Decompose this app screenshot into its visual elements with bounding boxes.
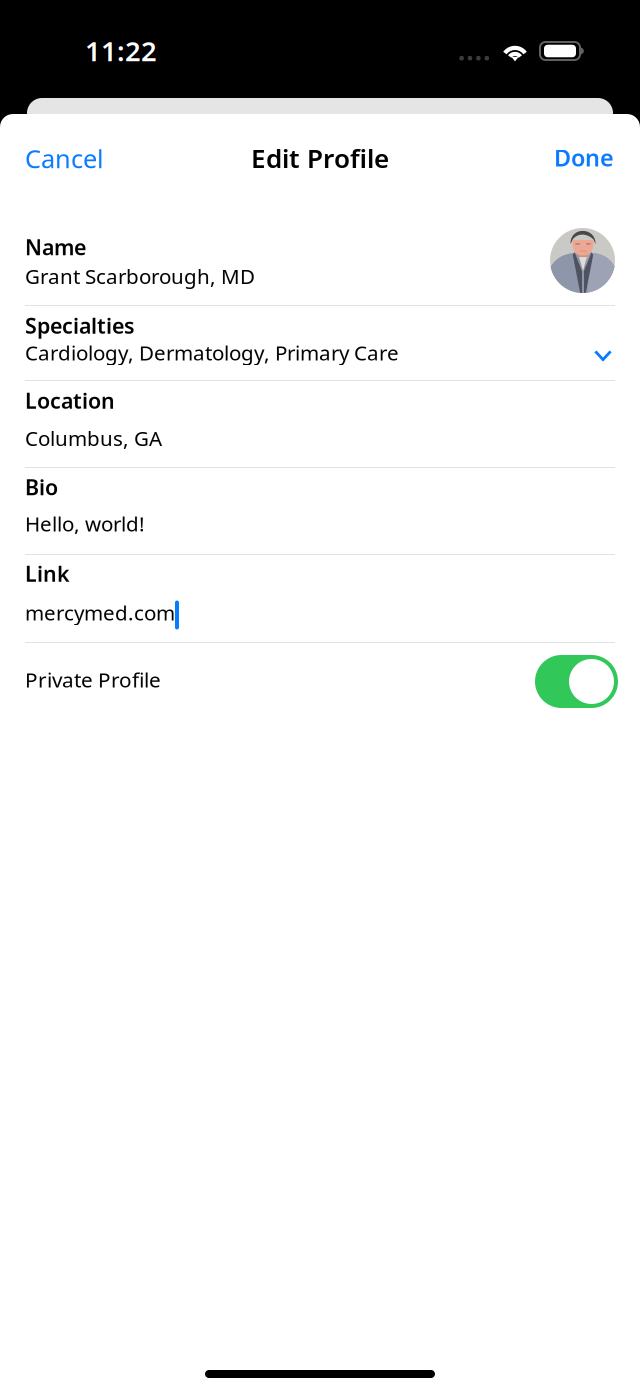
staticText: Specialties <box>25 311 135 340</box>
staticText: Cardiology, Dermatology, Primary Care <box>25 338 399 366</box>
button[interactable]: Name <box>0 209 640 305</box>
staticText: 11:22 <box>85 32 157 69</box>
staticText: Bio <box>25 472 58 502</box>
button[interactable]: Cancel <box>0 114 120 209</box>
button[interactable]: Private Profile <box>0 643 640 719</box>
staticText: Link <box>25 559 70 588</box>
staticText: Grant Scarborough, MD <box>25 262 255 290</box>
staticText: Name <box>25 232 86 262</box>
staticText: Private Profile <box>25 665 161 694</box>
button[interactable]: Private Profile, on <box>535 655 618 708</box>
button[interactable]: Location <box>0 381 640 467</box>
staticText: Edit Profile <box>251 140 389 176</box>
staticText: Done <box>554 142 614 173</box>
staticText: mercymed.com <box>25 598 175 626</box>
button[interactable]: Link <box>0 555 640 642</box>
staticText: Cancel <box>25 141 104 176</box>
staticText: Hello, world! <box>25 509 145 537</box>
staticText: Location <box>25 386 115 415</box>
staticText: Columbus, GA <box>25 424 162 452</box>
button[interactable]: Done <box>538 114 640 209</box>
button[interactable]: Specialties <box>0 306 640 380</box>
button[interactable]: Bio <box>0 468 640 554</box>
